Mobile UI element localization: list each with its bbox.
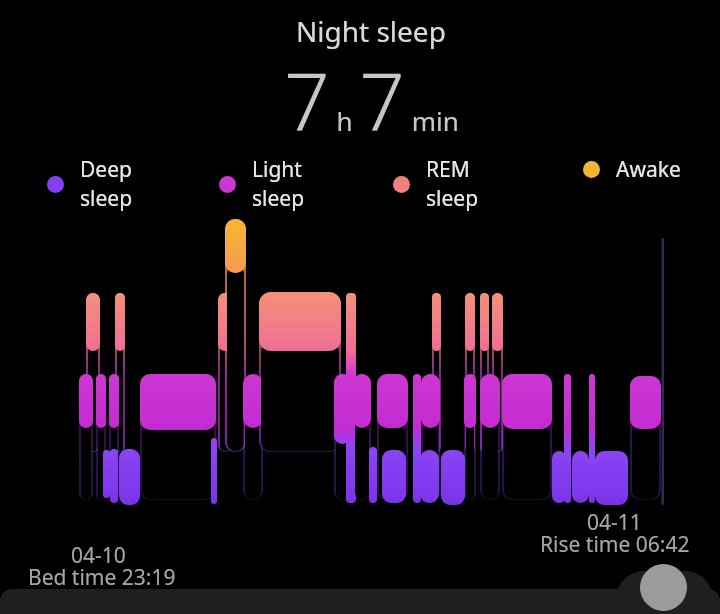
button[interactable]: REM <box>393 155 479 213</box>
staticText: Deep <box>80 155 132 184</box>
staticText: Light <box>252 155 302 184</box>
button[interactable]: Deep <box>47 155 133 213</box>
staticText: Bed time 23:19 <box>28 563 176 592</box>
button[interactable] <box>640 564 687 611</box>
staticText: Rise time 06:42 <box>540 530 690 559</box>
staticText: sleep <box>80 184 133 213</box>
staticText: 04-11 <box>587 508 642 537</box>
button[interactable]: Awake <box>583 155 681 184</box>
button[interactable]: Light <box>219 155 305 213</box>
staticText: Awake <box>616 155 681 184</box>
staticText: REM <box>426 155 470 184</box>
staticText: 04-10 <box>71 541 126 570</box>
staticText: 7 h 7 min <box>284 45 459 154</box>
staticText: sleep <box>426 184 479 213</box>
staticText: Night sleep <box>296 12 446 50</box>
button[interactable] <box>0 589 720 614</box>
staticText: sleep <box>252 184 305 213</box>
